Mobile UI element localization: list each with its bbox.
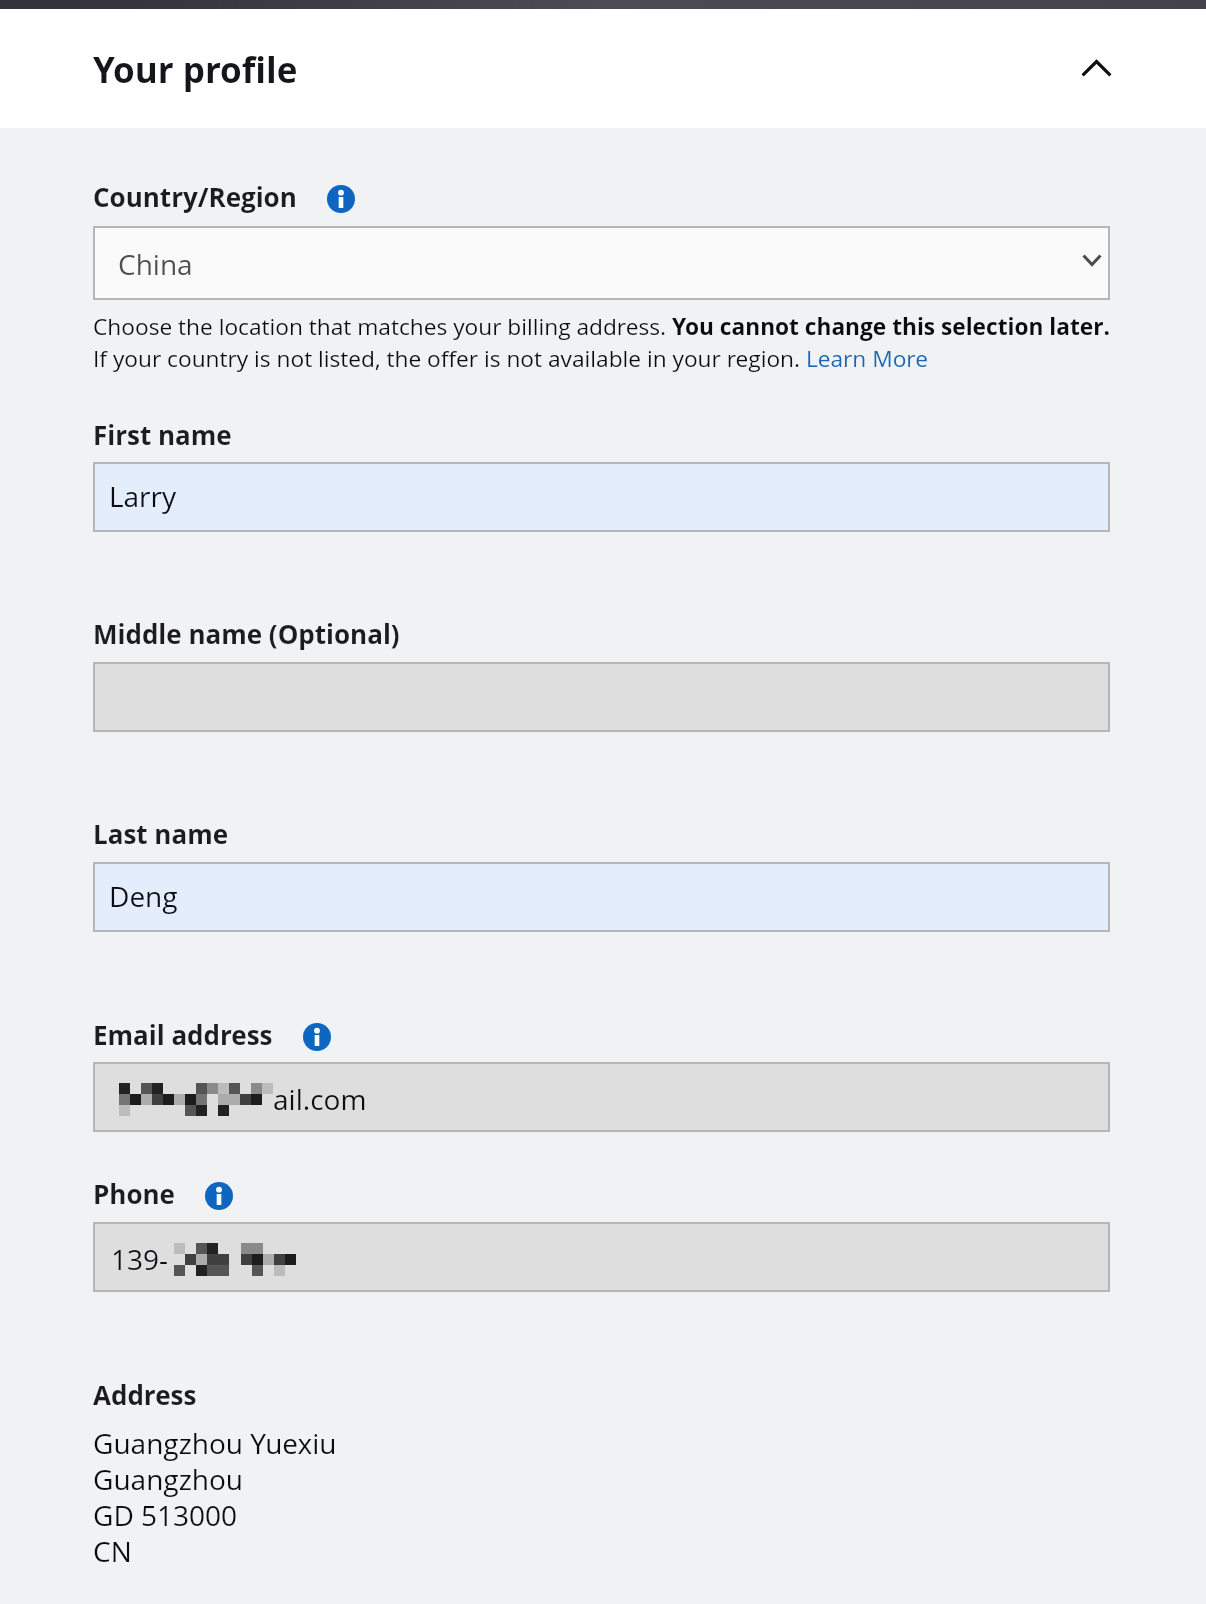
button[interactable]: 139-: [95, 1224, 1108, 1290]
button[interactable]: More information about Country/Region: [327, 185, 355, 213]
staticText: Address: [93, 1377, 197, 1412]
staticText: Your profile: [93, 46, 298, 94]
staticText: Middle name (Optional): [93, 616, 400, 651]
button[interactable]: Learn More: [815, 347, 941, 377]
staticText: Choose the location that matches your bi…: [93, 310, 1153, 374]
staticText: Guangzhou Yuexiu Guangzhou GD 513000 CN: [93, 1426, 337, 1570]
staticText: China: [118, 245, 193, 283]
button[interactable]: More information about Email address: [303, 1023, 331, 1051]
staticText: Larry: [109, 477, 177, 515]
button[interactable]: Larry: [95, 464, 1108, 530]
button[interactable]: More information about Phone: [205, 1182, 233, 1210]
staticText: First name: [93, 417, 232, 452]
staticText: Phone: [93, 1176, 175, 1211]
staticText: ail.com: [273, 1080, 367, 1118]
button[interactable]: Deng: [95, 864, 1108, 930]
button[interactable]: China: [95, 228, 1108, 298]
staticText: Country/Region: [93, 179, 297, 214]
staticText: Last name: [93, 816, 229, 851]
staticText: Email address: [93, 1017, 273, 1052]
staticText: Deng: [109, 877, 178, 915]
staticText: 139-: [111, 1240, 169, 1278]
button[interactable]: ail.com: [95, 1064, 1108, 1130]
button[interactable]: Collapse section: [1066, 38, 1126, 98]
